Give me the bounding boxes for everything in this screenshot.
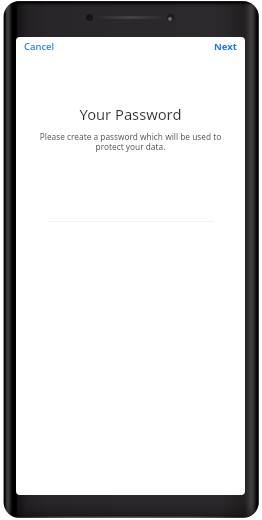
staticText: Next	[214, 40, 237, 53]
other: Phone device frame	[0, 0, 262, 520]
button[interactable]: Next	[206, 37, 245, 55]
staticText: Your Password	[16, 104, 245, 124]
staticText: Please create a password which will be u…	[37, 131, 224, 152]
button[interactable]: Cancel	[16, 37, 63, 55]
staticText: Cancel	[24, 40, 55, 53]
